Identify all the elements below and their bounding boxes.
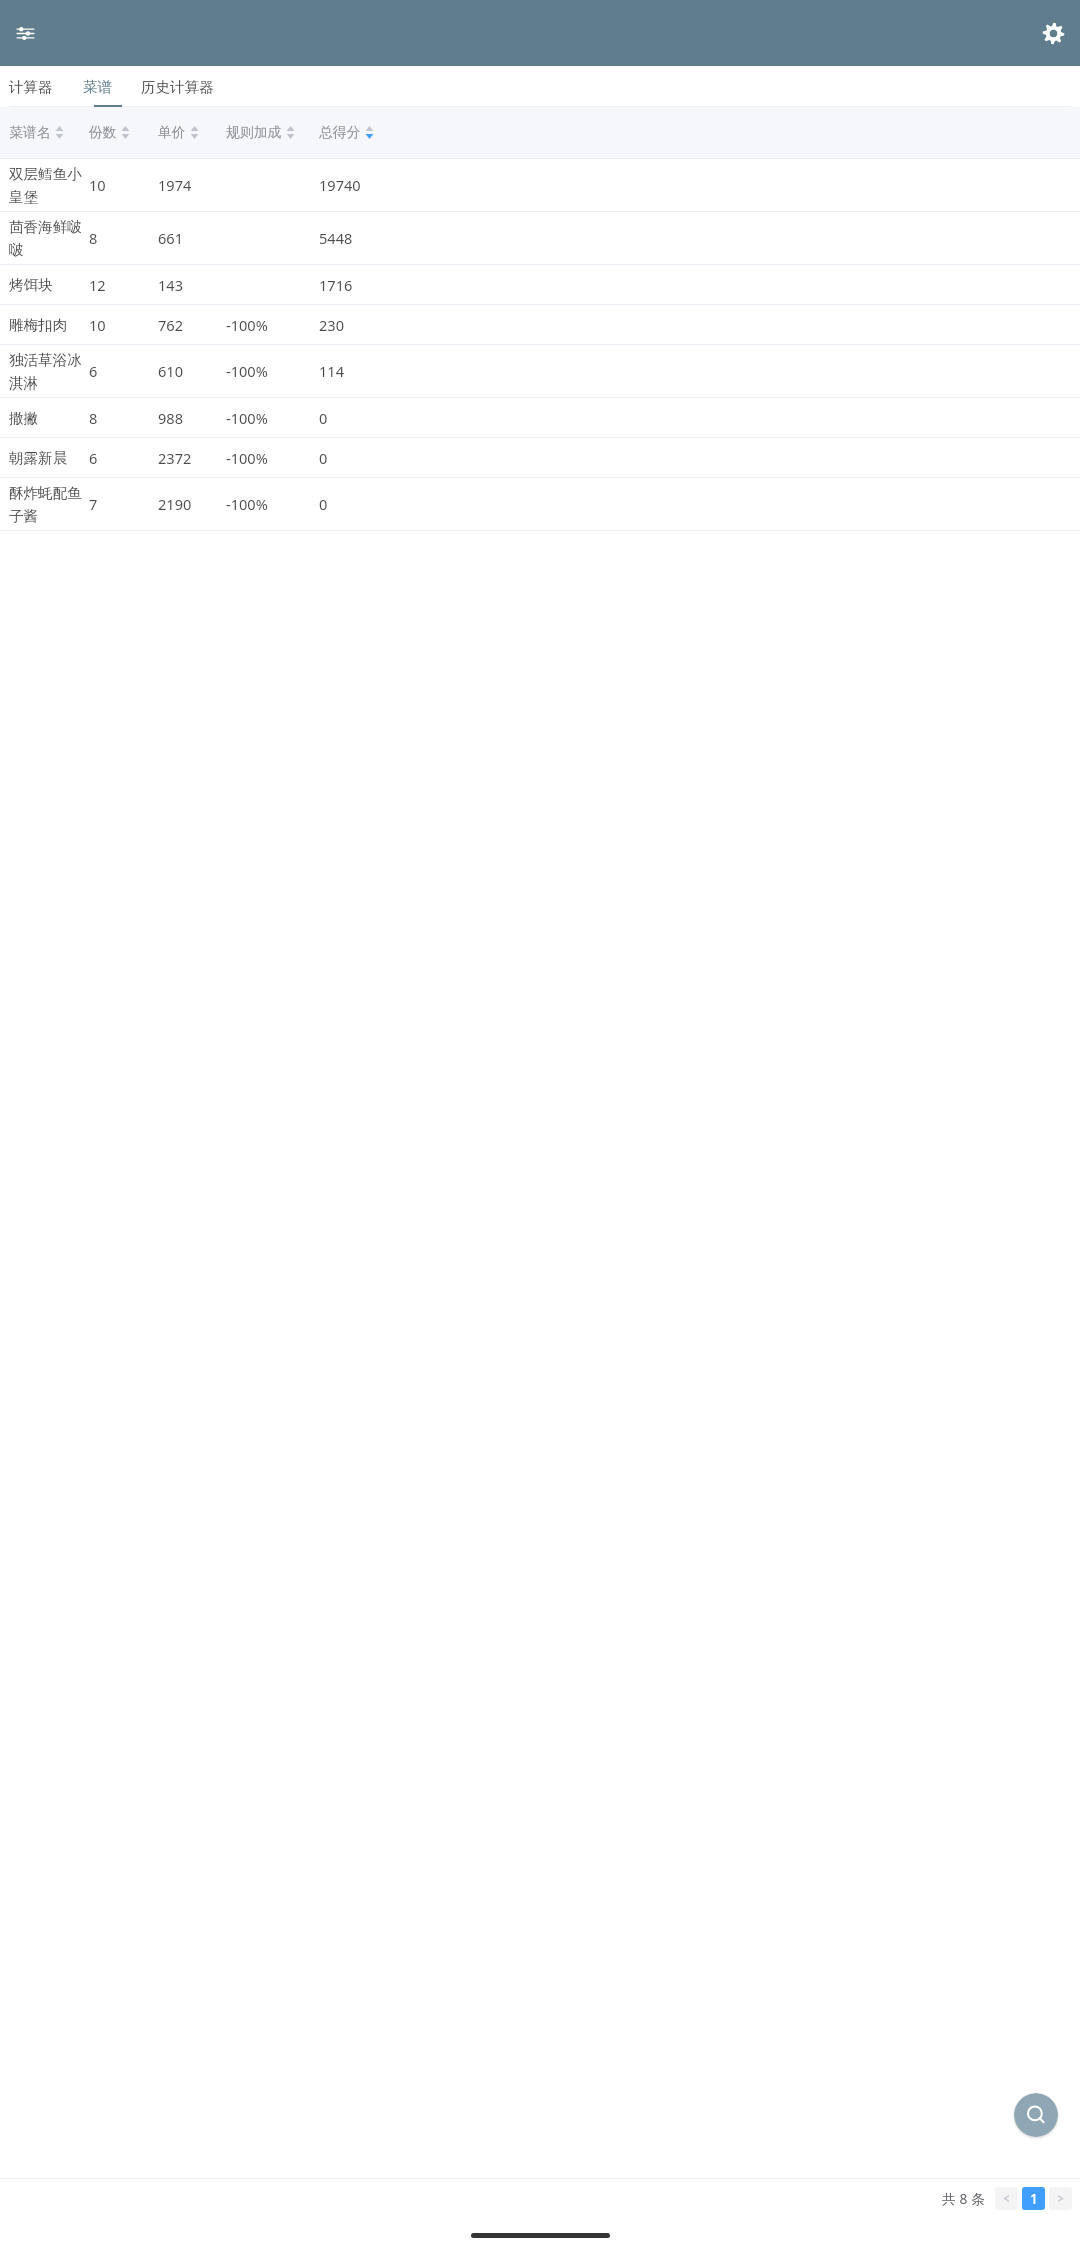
staticText: 5448 (319, 228, 353, 248)
button[interactable]: 计算器 (9, 66, 73, 107)
button[interactable]: 朝露新晨 (0, 438, 1080, 477)
staticText: 1974 (158, 175, 192, 195)
staticText: 661 (158, 228, 183, 248)
button[interactable]: 1 (1022, 2187, 1045, 2210)
staticText: 1716 (319, 275, 353, 295)
staticText: 10 (89, 315, 106, 335)
staticText: 610 (158, 361, 183, 381)
button[interactable]: 撒撇 (0, 398, 1080, 437)
staticText: 19740 (319, 175, 361, 195)
button[interactable]: Filter (7, 15, 43, 51)
button[interactable]: 菜谱名 (9, 107, 81, 158)
button[interactable]: Search (1014, 2093, 1058, 2137)
button[interactable]: Settings (1033, 13, 1073, 53)
button[interactable]: 菜谱 (83, 66, 121, 107)
staticText: 988 (158, 408, 183, 428)
button[interactable]: 茴香海鲜啵 啵 (0, 212, 1080, 264)
staticText: 1 (1030, 2189, 1038, 2208)
staticText: 762 (158, 315, 183, 335)
staticText: 6 (89, 361, 98, 381)
staticText: -100% (226, 315, 268, 335)
staticText: 0 (319, 448, 328, 468)
staticText: 12 (89, 275, 106, 295)
staticText: 10 (89, 175, 106, 195)
button[interactable]: 烤饵块 (0, 265, 1080, 304)
staticText: 规则加成 (226, 124, 282, 141)
staticText: -100% (226, 448, 268, 468)
button[interactable] (1049, 2187, 1072, 2210)
staticText: 8 (89, 408, 98, 428)
staticText: 独活草浴冰 淇淋 (9, 351, 82, 392)
staticText: -100% (226, 361, 268, 381)
staticText: 0 (319, 408, 328, 428)
button[interactable]: 双层鳕鱼小 皇堡 (0, 159, 1080, 211)
staticText: 雕梅扣肉 (9, 316, 68, 334)
staticText: 烤饵块 (9, 276, 53, 294)
staticText: 计算器 (9, 78, 53, 96)
staticText: 茴香海鲜啵 啵 (9, 218, 82, 259)
button[interactable]: 历史计算器 (141, 66, 227, 107)
button[interactable]: 规则加成 (226, 107, 312, 158)
staticText: 8 (89, 228, 98, 248)
staticText: 0 (319, 494, 328, 514)
staticText: 菜谱名 (9, 124, 51, 141)
button[interactable]: 雕梅扣肉 (0, 305, 1080, 344)
staticText: 2190 (158, 494, 192, 514)
staticText: 总得分 (319, 124, 361, 141)
button[interactable]: 独活草浴冰 淇淋 (0, 345, 1080, 397)
button[interactable]: 酥炸蚝配鱼 子酱 (0, 478, 1080, 530)
button[interactable] (995, 2187, 1018, 2210)
button[interactable]: 总得分 (319, 107, 391, 158)
staticText: 2372 (158, 448, 192, 468)
button[interactable]: 份数 (89, 107, 147, 158)
staticText: 共 8 条 (942, 2189, 985, 2208)
button[interactable]: 单价 (158, 107, 216, 158)
staticText: 230 (319, 315, 344, 335)
staticText: 单价 (158, 124, 186, 141)
staticText: 143 (158, 275, 183, 295)
staticText: 撒撇 (9, 409, 39, 427)
staticText: 历史计算器 (141, 78, 214, 96)
staticText: -100% (226, 408, 268, 428)
staticText: 朝露新晨 (9, 449, 68, 467)
staticText: 菜谱 (83, 78, 113, 96)
staticText: -100% (226, 494, 268, 514)
staticText: 份数 (89, 124, 117, 141)
staticText: 114 (319, 361, 344, 381)
staticText: 7 (89, 494, 98, 514)
staticText: 酥炸蚝配鱼 子酱 (9, 484, 82, 525)
staticText: 双层鳕鱼小 皇堡 (9, 165, 82, 206)
staticText: 6 (89, 448, 98, 468)
